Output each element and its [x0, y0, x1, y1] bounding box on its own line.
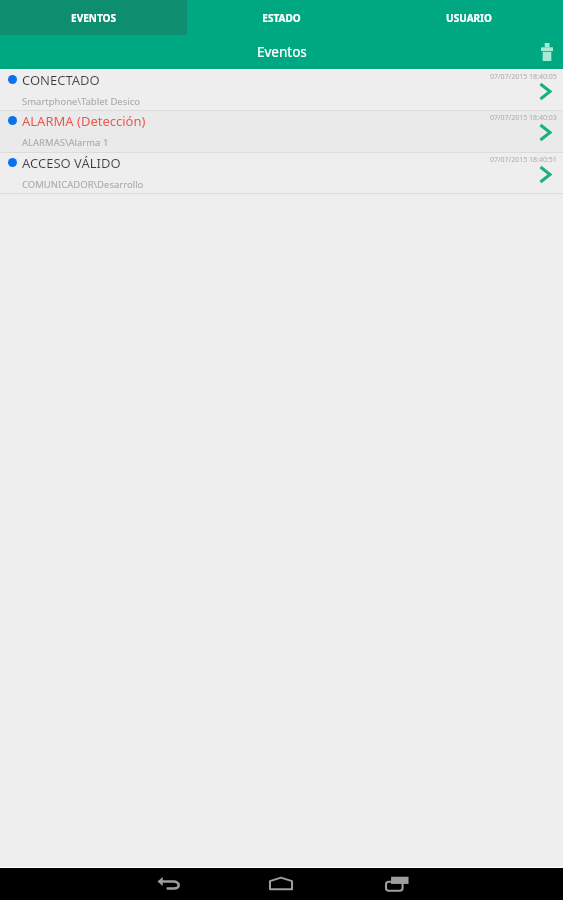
button[interactable]: Back — [148, 868, 188, 900]
staticText: CONECTADO — [22, 71, 100, 89]
button[interactable]: Delete events — [534, 35, 560, 69]
button[interactable]: Home — [261, 868, 301, 900]
button[interactable]: ESTADO — [187, 0, 375, 35]
staticText: ACCESO VÁLIDO — [22, 154, 121, 172]
button[interactable]: Recent apps — [377, 868, 417, 900]
staticText: EVENTOS — [71, 11, 116, 25]
button[interactable]: ACCESO VÁLIDO — [0, 153, 563, 194]
staticText: 07/07/2015 18:40:05 — [490, 72, 557, 82]
staticText: USUARIO — [446, 11, 492, 25]
button[interactable]: ALARMA (Detección) — [0, 111, 563, 153]
button[interactable]: USUARIO — [375, 0, 563, 35]
staticText: ESTADO — [262, 11, 301, 25]
staticText: ALARMAS\Alarma 1 — [22, 136, 109, 149]
staticText: COMUNICADOR\Desarrollo — [22, 178, 144, 191]
button[interactable]: CONECTADO — [0, 70, 563, 111]
staticText: Eventos — [257, 43, 307, 61]
staticText: 07/07/2015 18:40:03 — [490, 113, 557, 123]
staticText: ALARMA (Detección) — [22, 112, 146, 130]
staticText: Smartphone\Tablet Desico — [22, 95, 141, 108]
button[interactable]: EVENTOS — [0, 0, 187, 35]
staticText: 07/07/2015 18:40:51 — [490, 155, 557, 165]
